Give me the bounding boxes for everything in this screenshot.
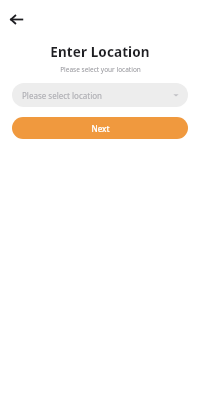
staticText: Next bbox=[91, 123, 110, 134]
staticText: Enter Location bbox=[50, 43, 150, 61]
button[interactable]: Next bbox=[12, 117, 188, 139]
button[interactable]: Please select location bbox=[12, 83, 188, 107]
button[interactable]: Back bbox=[6, 9, 26, 29]
staticText: Please select your location bbox=[60, 65, 141, 74]
staticText: Please select location bbox=[22, 90, 103, 101]
